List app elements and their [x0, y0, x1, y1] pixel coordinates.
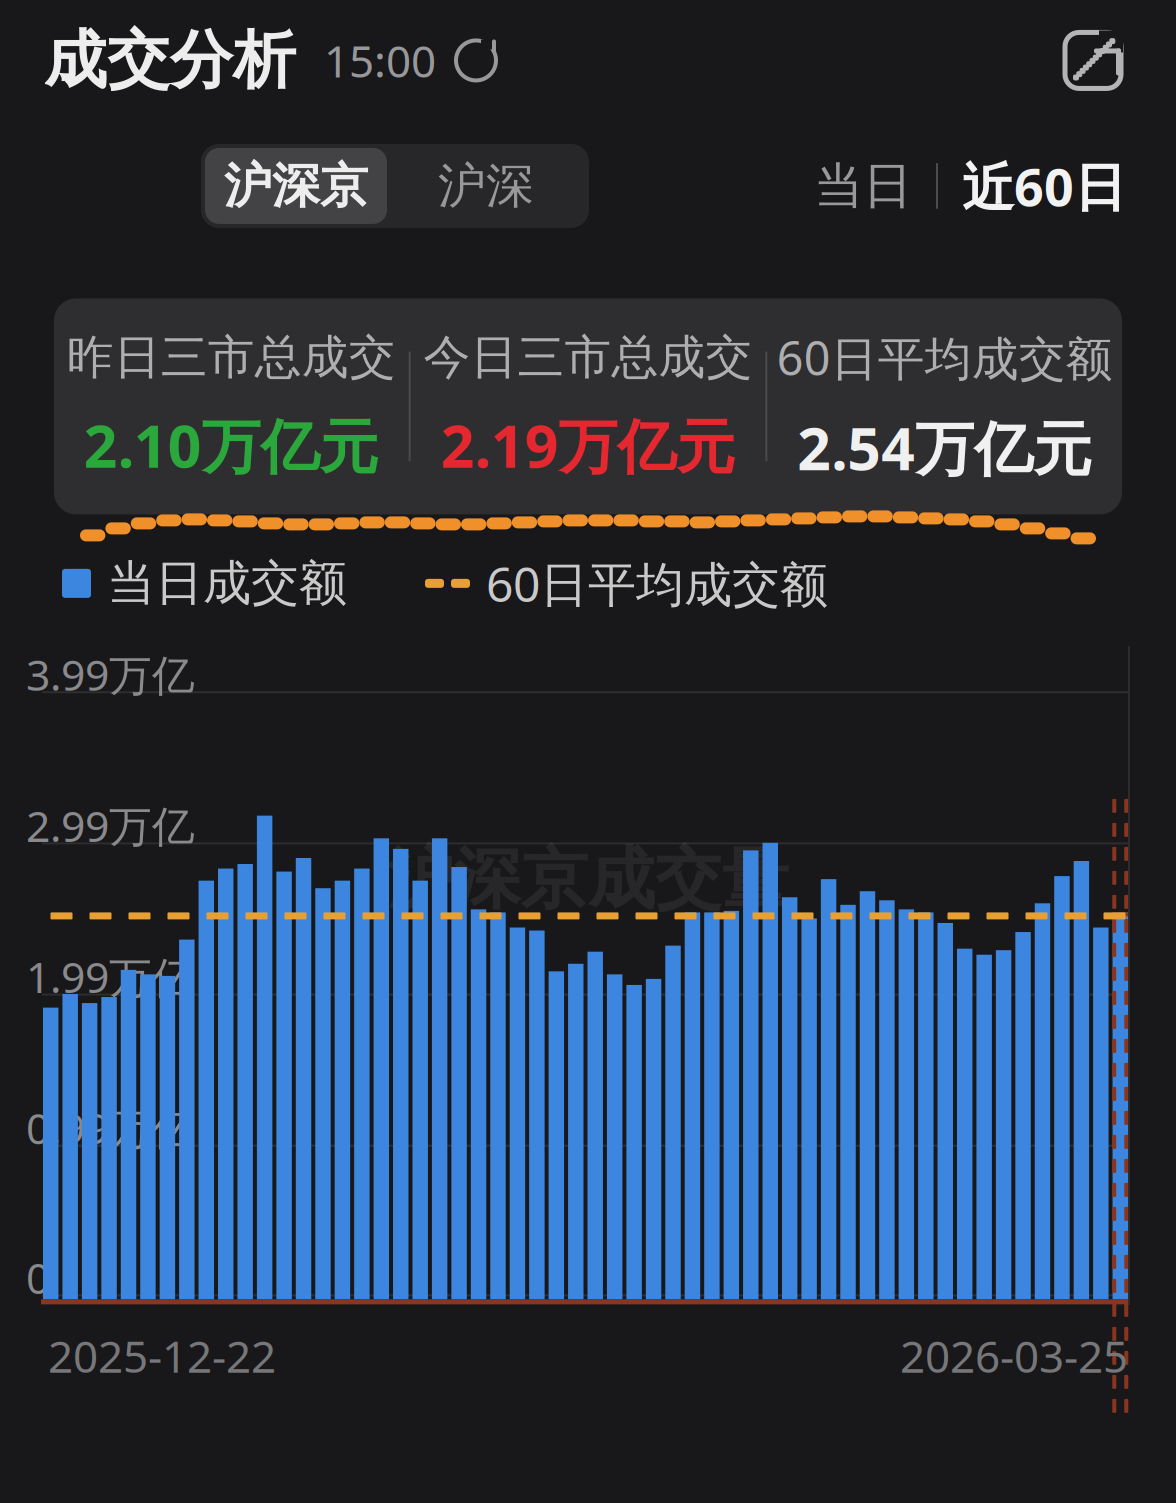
staticText: 1.99万亿 [26, 948, 195, 1005]
staticText: 成交分析 [44, 22, 296, 99]
staticText: 沪深 [438, 156, 534, 215]
staticText: 当日成交额 [107, 554, 347, 613]
staticText: 沪深京成交量 [387, 838, 789, 920]
staticText: 2.19万亿元 [440, 406, 735, 484]
button[interactable]: 近60日 [938, 139, 1150, 232]
button[interactable]: 沪深京 [205, 148, 387, 224]
staticText: 2.10万亿元 [84, 406, 379, 484]
button[interactable]: 当日 [790, 144, 936, 228]
staticText: 3.99万亿 [26, 646, 195, 703]
staticText: 2025-12-22 [48, 1326, 276, 1385]
staticText: 昨日三市总成交 [67, 329, 396, 386]
staticText: 60日平均成交额 [777, 326, 1113, 388]
staticText: 2.54万亿元 [797, 408, 1092, 486]
button[interactable]: 分享 [1054, 21, 1132, 99]
staticText: 近60日 [962, 151, 1126, 220]
staticText: 60日平均成交额 [486, 551, 828, 615]
staticText: 15:00 [324, 31, 436, 90]
staticText: 今日三市总成交 [423, 329, 752, 386]
staticText: 2026-03-25 [900, 1326, 1128, 1385]
button[interactable]: 刷新 [448, 32, 504, 88]
staticText: 2.99万亿 [26, 797, 195, 854]
staticText: 沪深京 [224, 156, 368, 215]
staticText: 0 [26, 1249, 50, 1306]
staticText: 0.99万亿 [26, 1099, 195, 1156]
staticText: 当日 [814, 156, 912, 216]
button[interactable]: 沪深 [387, 148, 585, 224]
